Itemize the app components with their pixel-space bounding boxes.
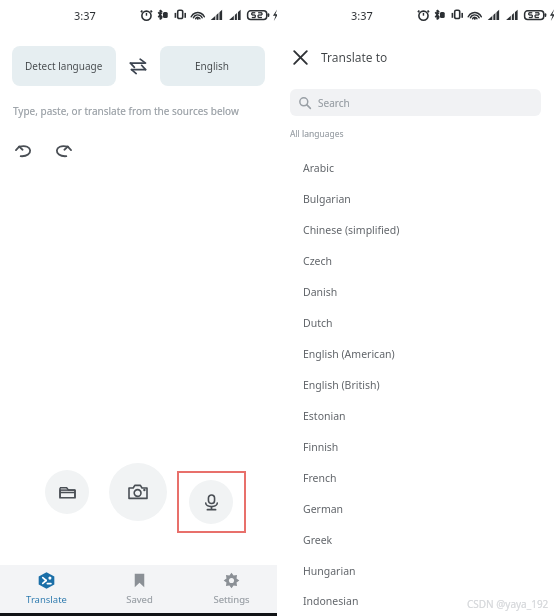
staticText: Chinese (simplified) [303,223,400,237]
button[interactable]: German [277,493,554,524]
staticText: 3:37 [74,8,96,23]
button[interactable]: Undo [8,134,40,166]
staticText: Estonian [303,409,346,423]
button[interactable]: Documents [45,470,89,514]
button[interactable]: Microphone [189,480,233,524]
staticText: Translate [26,593,67,606]
button[interactable]: Close [285,42,315,72]
staticText: Finnish [303,440,339,454]
staticText: Danish [303,285,338,299]
button[interactable]: Swap languages [116,46,160,86]
button[interactable]: Finnish [277,431,554,462]
staticText: 3:37 [351,8,373,23]
button[interactable]: Search [290,89,541,116]
staticText: Greek [303,533,333,547]
button[interactable]: Bulgarian [277,183,554,214]
button[interactable]: Settings [185,565,277,613]
button[interactable]: Arabic [277,152,554,183]
staticText: All languages [290,128,344,140]
button[interactable]: Hungarian [277,555,554,586]
staticText: CSDN @yaya_192 [467,597,549,611]
staticText: Settings [213,593,250,606]
staticText: Search [318,96,350,110]
staticText: Arabic [303,161,334,175]
staticText: English (British) [303,378,380,392]
button[interactable]: Translate [0,565,93,613]
button[interactable]: Czech [277,245,554,276]
button[interactable]: Estonian [277,400,554,431]
staticText: Dutch [303,316,333,330]
button[interactable]: Redo [46,134,78,166]
button[interactable]: English (British) [277,369,554,400]
staticText: English (American) [303,347,395,361]
staticText: Hungarian [303,564,356,578]
staticText: Type, paste, or translate from the sourc… [13,104,239,118]
button[interactable]: Camera [109,463,167,521]
staticText: Translate to [321,49,388,65]
button[interactable]: Chinese (simplified) [277,214,554,245]
button[interactable]: English (American) [277,338,554,369]
button[interactable]: French [277,462,554,493]
staticText: Saved [126,593,153,606]
staticText: English [195,59,230,73]
button[interactable]: Dutch [277,307,554,338]
staticText: Detect language [25,59,103,73]
button[interactable]: Indonesian [277,586,554,616]
button[interactable]: Saved [93,565,185,613]
button[interactable]: Detect language [12,46,116,86]
staticText: French [303,471,337,485]
staticText: Bulgarian [303,192,351,206]
staticText: Indonesian [303,594,359,608]
staticText: German [303,502,344,516]
staticText: Czech [303,254,333,268]
button[interactable]: Danish [277,276,554,307]
button[interactable]: English [160,46,265,86]
button[interactable]: Greek [277,524,554,555]
